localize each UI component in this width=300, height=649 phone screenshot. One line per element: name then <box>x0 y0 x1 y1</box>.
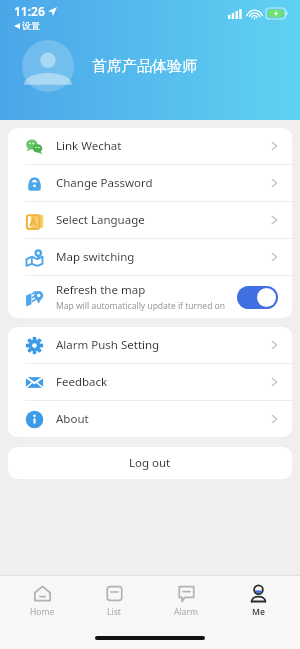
staticText: Log out <box>129 455 171 471</box>
staticText: Map will automatically update if turned … <box>56 300 225 312</box>
staticText: Feedback <box>56 374 108 390</box>
button[interactable]: Change Password <box>8 165 292 201</box>
button[interactable]: Alarm Push Setting <box>8 327 292 363</box>
staticText: Change Password <box>56 175 153 191</box>
staticText: 首席产品体验师 <box>92 57 197 76</box>
staticText: Alarm <box>174 606 198 618</box>
staticText: Refresh the map <box>56 282 146 298</box>
button[interactable]: Me <box>228 584 288 618</box>
staticText: Link Wechat <box>56 138 122 154</box>
button[interactable]: Feedback <box>8 364 292 400</box>
staticText: Alarm Push Setting <box>56 337 160 353</box>
button[interactable]: Alarm <box>156 584 216 618</box>
staticText: About <box>56 411 89 427</box>
staticText: List <box>107 606 121 618</box>
staticText: Map switching <box>56 249 135 265</box>
button[interactable]: Map switching <box>8 239 292 275</box>
button[interactable]: Log out <box>8 447 292 479</box>
button[interactable]: Link Wechat <box>8 128 292 164</box>
staticText: Me <box>252 606 265 618</box>
staticText: 设置 <box>22 20 40 31</box>
staticText: Home <box>30 606 55 618</box>
staticText: 11:26 <box>14 3 45 19</box>
button[interactable]: Select Language <box>8 202 292 238</box>
staticText: Select Language <box>56 212 145 228</box>
button[interactable]: Refresh the map <box>8 276 292 318</box>
button[interactable]: About <box>8 401 292 437</box>
button[interactable]: List <box>84 584 144 618</box>
button[interactable]: Refresh the map toggle <box>237 286 278 309</box>
button[interactable]: Home <box>12 584 72 618</box>
